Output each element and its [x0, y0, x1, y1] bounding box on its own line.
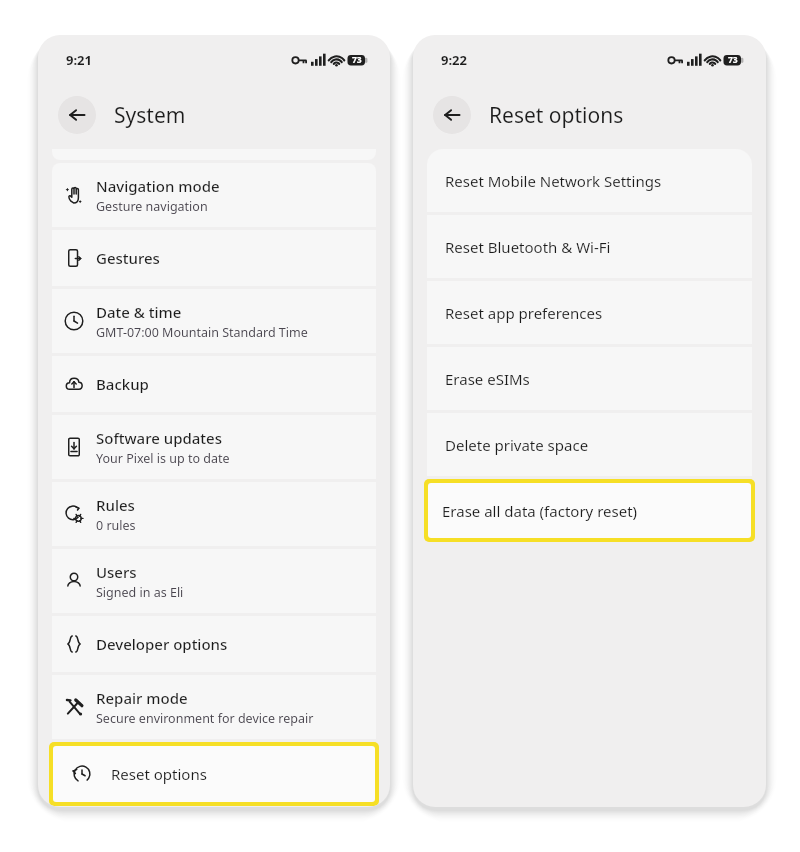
staticText: Erase eSIMs — [445, 369, 530, 389]
staticText: Reset Mobile Network Settings — [445, 171, 662, 191]
staticText: Gestures — [96, 248, 160, 268]
button[interactable]: Navigation mode — [52, 163, 376, 227]
staticText: Rules — [96, 495, 135, 515]
button[interactable]: Date & time — [52, 289, 376, 353]
staticText: Navigation mode — [96, 176, 220, 196]
staticText: 73 — [728, 54, 738, 66]
staticText: GMT-07:00 Mountain Standard Time — [96, 324, 308, 341]
button[interactable]: Gestures — [52, 230, 376, 286]
staticText: Reset app preferences — [445, 303, 603, 323]
button[interactable]: Reset options — [53, 746, 375, 802]
staticText: Reset options — [111, 764, 207, 784]
staticText: Developer options — [96, 634, 228, 654]
staticText: Delete private space — [445, 435, 589, 455]
staticText: 9:21 — [66, 51, 92, 69]
staticText: Software updates — [96, 428, 222, 448]
button[interactable]: Back — [58, 96, 96, 134]
staticText: Backup — [96, 374, 149, 394]
button[interactable]: Repair mode — [52, 675, 376, 739]
staticText: Repair mode — [96, 688, 188, 708]
button[interactable]: Erase eSIMs — [427, 347, 752, 410]
staticText: Gesture navigation — [96, 198, 208, 215]
staticText: 0 rules — [96, 517, 136, 534]
staticText: Signed in as Eli — [96, 584, 184, 601]
staticText: Date & time — [96, 302, 182, 322]
button[interactable]: Software updates — [52, 415, 376, 479]
button[interactable]: Rules — [52, 482, 376, 546]
staticText: 73 — [352, 54, 362, 66]
button[interactable]: Backup — [52, 356, 376, 412]
button[interactable]: Back — [433, 96, 471, 134]
staticText: Reset options — [489, 101, 624, 130]
button[interactable]: Delete private space — [427, 413, 752, 476]
staticText: Erase all data (factory reset) — [442, 501, 638, 521]
button[interactable]: Erase all data (factory reset) — [428, 483, 751, 538]
staticText: System — [114, 101, 186, 130]
button[interactable]: Developer options — [52, 616, 376, 672]
staticText: 9:22 — [441, 51, 467, 69]
staticText: Your Pixel is up to date — [96, 450, 230, 467]
staticText: Users — [96, 562, 137, 582]
staticText: Reset Bluetooth & Wi-Fi — [445, 237, 611, 257]
staticText: Secure environment for device repair — [96, 710, 314, 727]
button[interactable]: Reset Mobile Network Settings — [427, 149, 752, 212]
button[interactable]: Users — [52, 549, 376, 613]
button[interactable]: Reset app preferences — [427, 281, 752, 344]
button[interactable]: Reset Bluetooth & Wi-Fi — [427, 215, 752, 278]
